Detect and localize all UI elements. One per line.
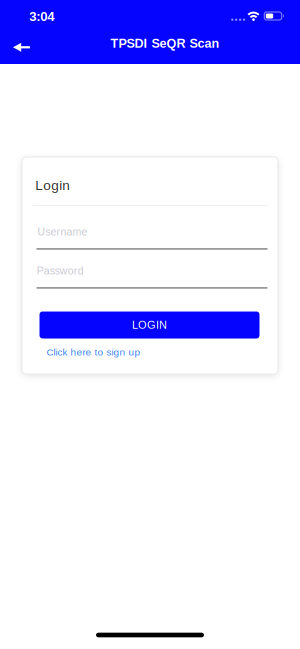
- button[interactable]: Click here to sign up: [46, 346, 140, 357]
- staticText: Username: [37, 226, 87, 238]
- staticText: Click here to sign up: [46, 346, 140, 357]
- staticText: Login: [35, 178, 70, 193]
- button[interactable]: LOGIN: [39, 311, 259, 338]
- staticText: TPSDI SeQR Scan: [110, 36, 219, 51]
- staticText: Password: [37, 265, 84, 277]
- button[interactable]: [8, 32, 42, 62]
- staticText: 3:04: [29, 9, 54, 24]
- staticText: LOGIN: [132, 319, 167, 331]
